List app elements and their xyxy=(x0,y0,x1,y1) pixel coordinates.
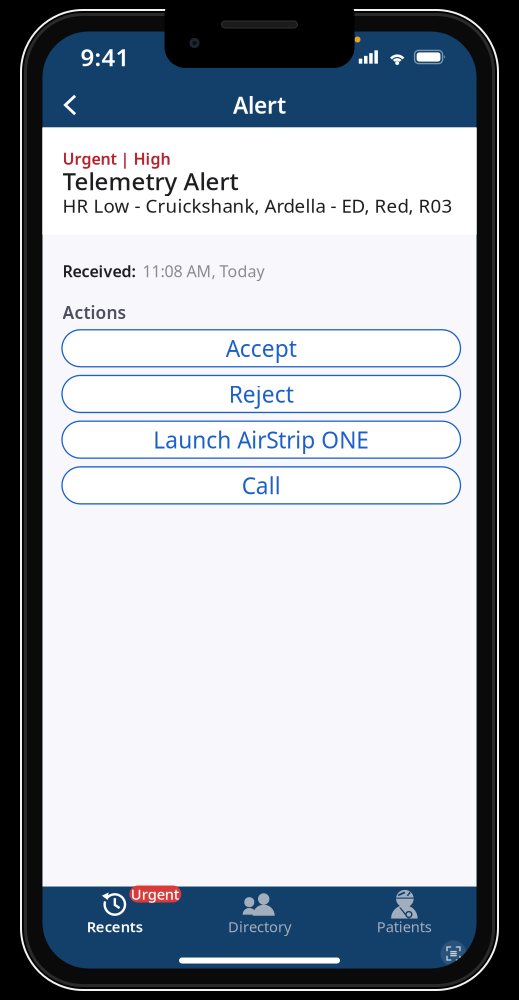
staticText: Patients xyxy=(377,917,432,936)
staticText: Directory xyxy=(228,917,291,936)
staticText: Accept xyxy=(226,333,297,363)
staticText: 11:08 AM, Today xyxy=(142,260,264,282)
staticText: Urgent | High xyxy=(62,148,170,169)
staticText: Reject xyxy=(229,379,294,409)
staticText: Recents xyxy=(87,917,143,936)
staticText: Alert xyxy=(233,90,286,120)
staticText: Call xyxy=(242,470,281,500)
button[interactable]: Patients xyxy=(332,891,476,935)
staticText: Telemetry Alert xyxy=(62,165,238,197)
button[interactable]: Call xyxy=(62,467,460,504)
staticText: Launch AirStrip ONE xyxy=(153,425,369,455)
staticText: 9:41 xyxy=(80,41,129,73)
button[interactable]: Launch AirStrip ONE xyxy=(62,421,460,458)
button[interactable]: Urgent xyxy=(42,891,187,935)
staticText: Urgent xyxy=(131,884,180,904)
staticText: Received: xyxy=(62,260,135,282)
button[interactable]: Reject xyxy=(62,375,460,412)
button[interactable]: Accept xyxy=(62,330,460,367)
button[interactable]: Back xyxy=(54,86,86,124)
button[interactable]: Directory xyxy=(187,891,332,935)
staticText: HR Low - Cruickshank, Ardella - ED, Red,… xyxy=(62,193,452,218)
button[interactable]: Scan xyxy=(440,940,466,966)
staticText: Actions xyxy=(62,301,126,324)
